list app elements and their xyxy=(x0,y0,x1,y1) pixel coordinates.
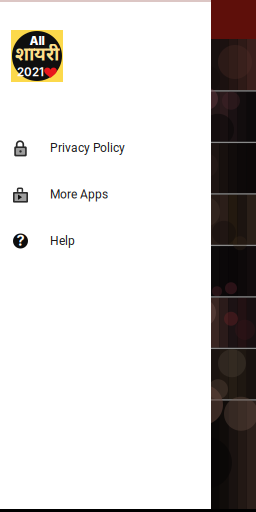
button[interactable]: Privacy Policy xyxy=(0,131,211,165)
staticText: Privacy Policy xyxy=(50,141,125,155)
button[interactable]: ? xyxy=(0,224,211,258)
button[interactable]: More Apps xyxy=(0,177,211,211)
staticText: शायरी xyxy=(15,44,59,68)
staticText: Help xyxy=(50,234,75,248)
staticText: ? xyxy=(16,232,24,249)
staticText: All xyxy=(29,34,44,48)
staticText: More Apps xyxy=(50,187,108,202)
staticText: 2021 xyxy=(17,65,44,79)
